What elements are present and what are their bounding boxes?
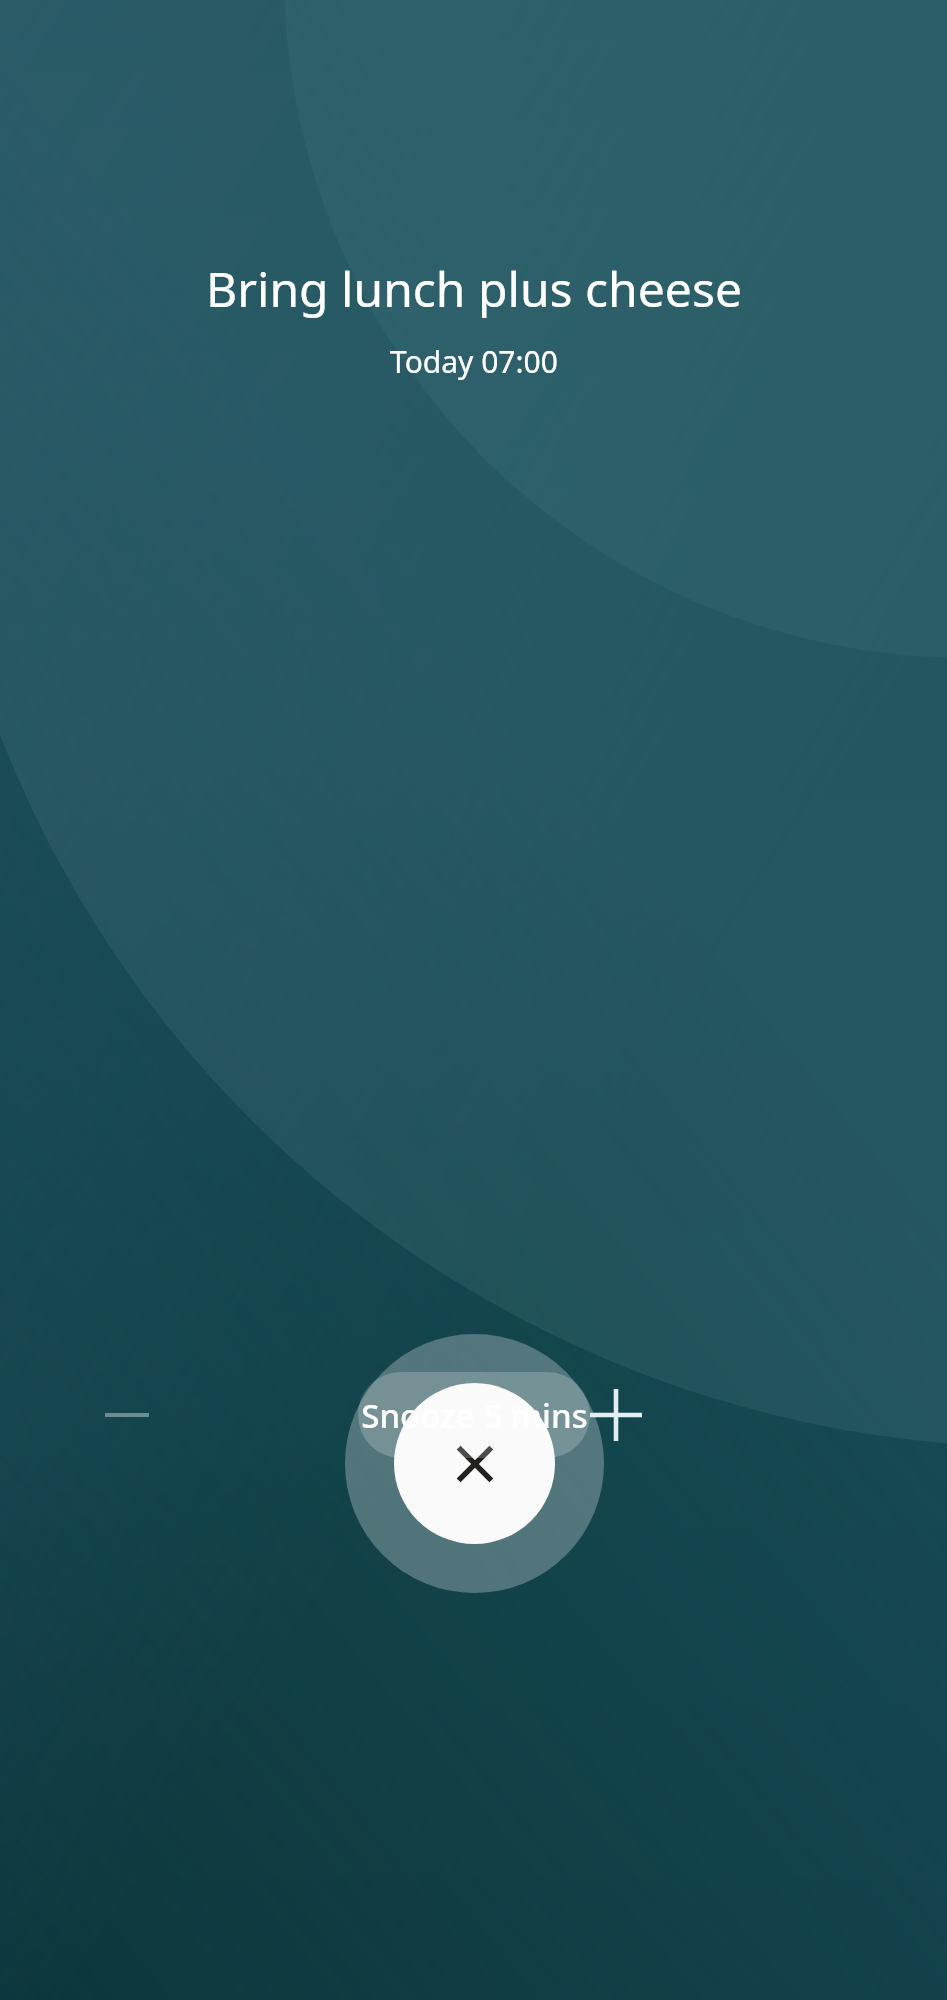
staticText: Bring lunch plus cheese: [206, 256, 742, 321]
staticText: Today 07:00: [390, 341, 558, 382]
button[interactable]: Increase snooze duration: [561, 1360, 671, 1470]
button[interactable]: Decrease snooze duration: [72, 1360, 182, 1470]
button[interactable]: Dismiss alarm: [345, 1334, 604, 1593]
button[interactable]: Snooze 5 mins: [358, 1372, 590, 1458]
staticText: Snooze 5 mins: [361, 1393, 588, 1438]
